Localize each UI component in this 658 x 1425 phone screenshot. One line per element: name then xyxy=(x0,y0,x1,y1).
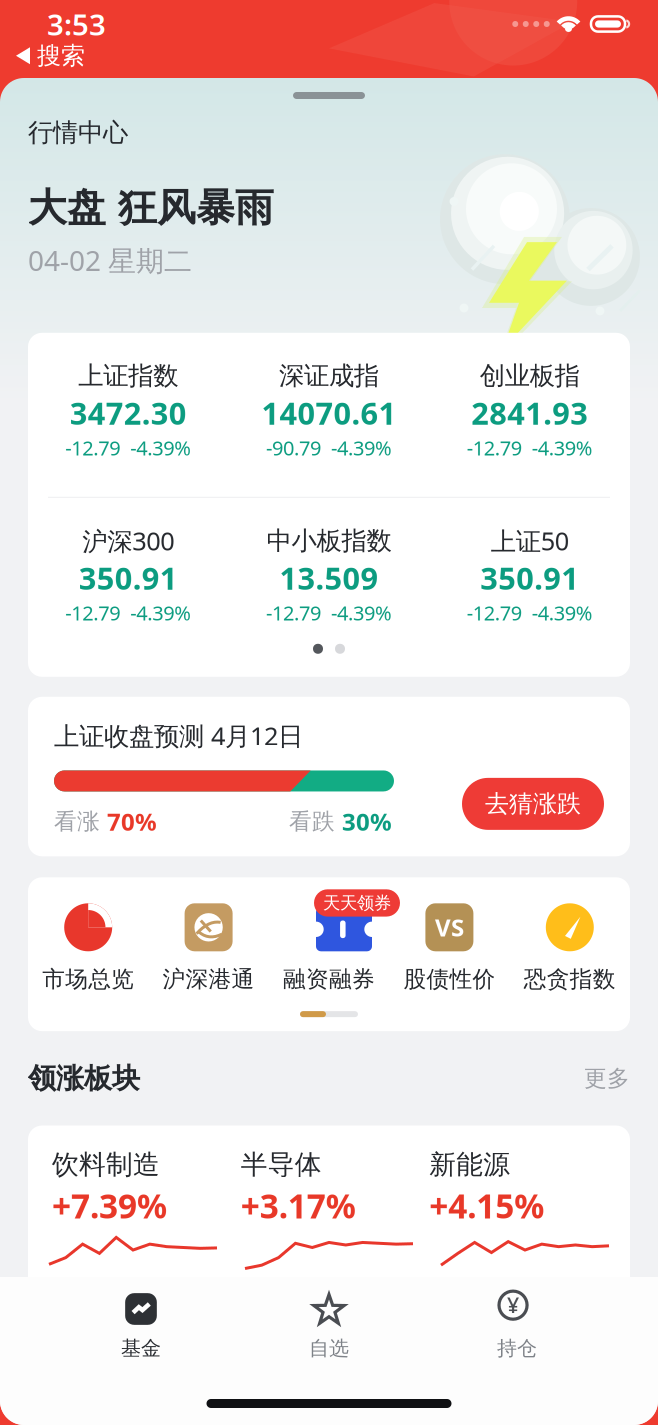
button[interactable]: 中小板指数 xyxy=(229,526,429,626)
button[interactable]: VS xyxy=(389,889,510,993)
staticText: 大盘 狂风暴雨 xyxy=(28,184,274,232)
staticText: 14070.61 xyxy=(261,392,396,433)
staticText: VS xyxy=(435,911,464,943)
staticText: 3472.30 xyxy=(70,392,187,433)
staticText: 沪深300 xyxy=(82,524,174,558)
staticText: -12.79 xyxy=(467,599,522,626)
button[interactable]: 更多 xyxy=(584,1064,630,1092)
button[interactable]: 上证50 xyxy=(429,526,630,626)
staticText: -4.39% xyxy=(532,434,593,461)
button[interactable]: 搜索 xyxy=(0,41,85,70)
staticText: 中小板指数 xyxy=(266,525,391,556)
button[interactable]: 恐贪指数 xyxy=(510,889,630,993)
staticText: ¥ xyxy=(507,1291,519,1319)
button[interactable]: 基金 xyxy=(47,1291,235,1361)
staticText: 上证指数 xyxy=(78,360,178,391)
staticText: 创业板指 xyxy=(480,360,580,391)
staticText: 看涨 xyxy=(54,807,107,835)
staticText: +7.39% xyxy=(52,1183,167,1228)
staticText: -4.39% xyxy=(331,599,392,626)
button[interactable]: 去猜涨跌 xyxy=(462,778,604,830)
staticText: -4.39% xyxy=(331,434,392,461)
button[interactable]: 市场总览 xyxy=(28,889,148,993)
staticText: 股债性价 xyxy=(403,965,495,993)
button[interactable]: 沪深300 xyxy=(28,526,229,626)
staticText: -12.79 xyxy=(65,599,120,626)
button[interactable]: ¥ xyxy=(423,1291,611,1361)
staticText: 持仓 xyxy=(497,1336,537,1361)
button[interactable]: 创业板指 xyxy=(429,361,630,461)
staticText: +4.15% xyxy=(429,1183,544,1228)
staticText: 350.91 xyxy=(79,557,178,598)
staticText: -12.79 xyxy=(266,599,321,626)
button[interactable]: 饮料制造 xyxy=(52,1149,241,1225)
staticText: 去猜涨跌 xyxy=(485,789,581,819)
button[interactable]: 新能源 xyxy=(429,1149,618,1225)
staticText: 融资融券 xyxy=(283,965,375,993)
button[interactable]: 深证成指 xyxy=(229,361,429,461)
staticText: 天天领券 xyxy=(323,892,391,914)
staticText: 04-02 星期二 xyxy=(28,242,192,279)
staticText: 上证收盘预测 4月12日 xyxy=(54,719,303,752)
staticText: +3.17% xyxy=(241,1183,356,1228)
staticText: -12.79 xyxy=(467,434,522,461)
staticText: -4.39% xyxy=(532,599,593,626)
staticText: 饮料制造 xyxy=(52,1148,160,1181)
staticText: 70% xyxy=(107,805,157,837)
staticText: 领涨板块 xyxy=(28,1061,140,1095)
staticText: 深证成指 xyxy=(279,360,379,391)
staticText: 市场总览 xyxy=(42,965,134,993)
staticText: 半导体 xyxy=(241,1148,322,1181)
staticText: 上证50 xyxy=(491,524,569,558)
staticText: -90.79 xyxy=(266,434,321,461)
staticText: 350.91 xyxy=(480,557,579,598)
button[interactable]: 沪深港通 xyxy=(148,889,269,993)
staticText: 新能源 xyxy=(429,1148,510,1181)
staticText: 看跌 xyxy=(289,807,342,835)
staticText: 行情中心 xyxy=(28,117,128,148)
staticText: 基金 xyxy=(121,1336,161,1361)
staticText: -12.79 xyxy=(65,434,120,461)
staticText: 搜索 xyxy=(37,41,85,70)
button[interactable]: 天天领券 xyxy=(269,889,389,993)
staticText: -4.39% xyxy=(130,599,191,626)
button[interactable]: 上证指数 xyxy=(28,361,229,461)
staticText: 恐贪指数 xyxy=(524,965,616,993)
staticText: 2841.93 xyxy=(471,392,588,433)
staticText: 30% xyxy=(342,805,392,837)
button[interactable]: 半导体 xyxy=(241,1149,429,1225)
staticText: 3:53 xyxy=(47,4,106,43)
staticText: 自选 xyxy=(309,1336,349,1361)
staticText: 13.509 xyxy=(279,557,378,598)
staticText: 更多 xyxy=(584,1064,630,1092)
button[interactable]: 自选 xyxy=(235,1291,423,1361)
staticText: 沪深港通 xyxy=(163,965,255,993)
staticText: -4.39% xyxy=(130,434,191,461)
